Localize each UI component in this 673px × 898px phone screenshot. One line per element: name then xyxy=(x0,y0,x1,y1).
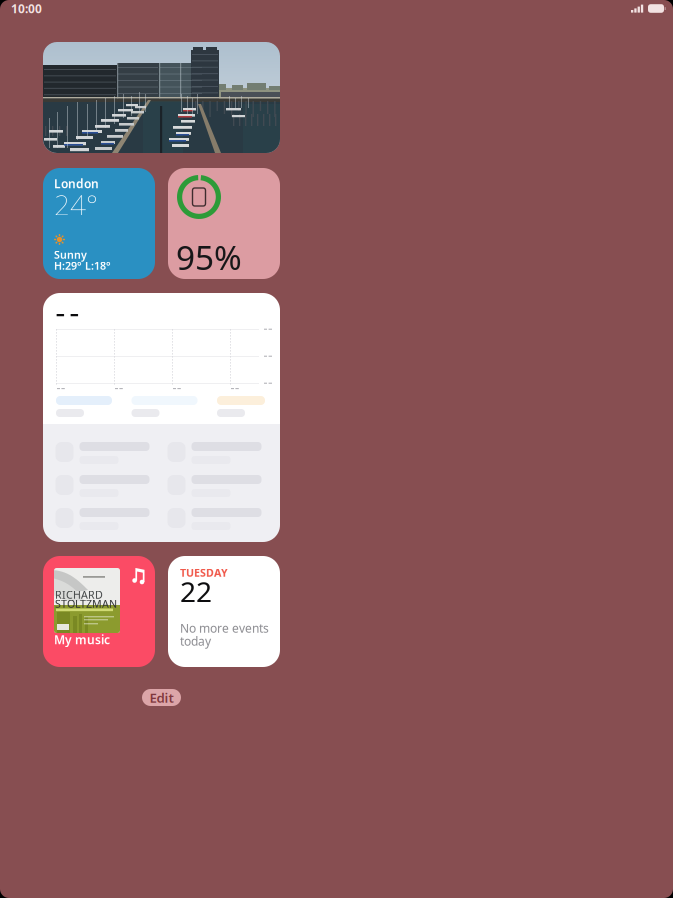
staticText: TUESDAY xyxy=(180,565,228,580)
button[interactable]: Loading widget xyxy=(43,293,280,542)
staticText: today xyxy=(180,633,211,649)
staticText: STOLTZMAN xyxy=(55,596,117,611)
staticText: H:29° L:18° xyxy=(54,258,111,273)
staticText: No more events xyxy=(180,620,269,636)
staticText: – – xyxy=(56,302,79,325)
staticText: RICHARD xyxy=(55,587,103,602)
staticText: London xyxy=(54,175,99,191)
staticText: 10:00 xyxy=(11,0,42,16)
button[interactable]: Weather, London, 24 degrees, Sunny xyxy=(43,168,155,279)
staticText: 24° xyxy=(54,186,98,223)
staticText: 22 xyxy=(180,573,212,610)
staticText: Sunny xyxy=(54,247,87,262)
staticText: Edit xyxy=(149,689,173,706)
button[interactable]: Edit xyxy=(142,689,181,706)
button[interactable]: Batteries, iPhone 95 percent xyxy=(168,168,280,279)
staticText: 95% xyxy=(176,235,242,279)
button[interactable]: Calendar, Tuesday 22, No more events tod… xyxy=(168,556,280,667)
button[interactable]: Photo xyxy=(43,42,280,153)
button[interactable]: Music, My music xyxy=(43,556,155,667)
staticText: My music xyxy=(54,631,110,647)
